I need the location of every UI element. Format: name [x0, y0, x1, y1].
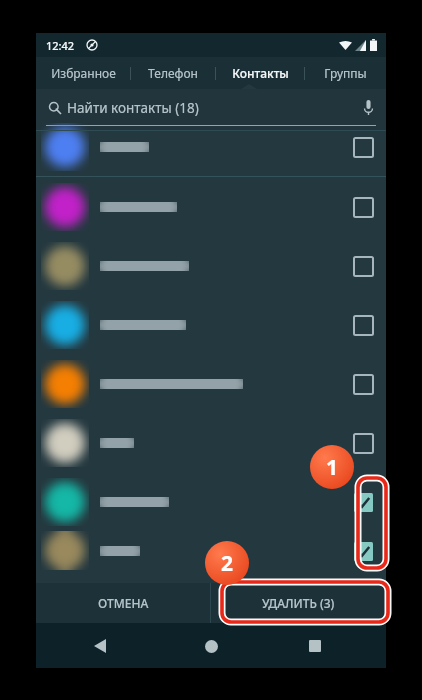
- button[interactable]: Recents: [297, 628, 333, 664]
- button[interactable]: Select contact: [347, 309, 379, 341]
- button[interactable]: Контакты: [216, 57, 304, 89]
- button[interactable]: Home: [193, 628, 229, 664]
- button[interactable]: Select contact: [36, 413, 386, 472]
- button[interactable]: Избранное: [36, 57, 130, 89]
- button[interactable]: Select contact: [36, 236, 386, 295]
- button[interactable]: Select contact: [347, 368, 379, 400]
- button[interactable]: Select contact: [347, 131, 379, 163]
- staticText: Группы: [324, 65, 367, 81]
- staticText: Найти контакты (18): [67, 99, 199, 117]
- button[interactable]: Группы: [305, 57, 386, 89]
- button[interactable]: Selected: [347, 535, 379, 567]
- button[interactable]: Select contact: [347, 191, 379, 223]
- button[interactable]: Selected: [36, 531, 386, 570]
- button[interactable]: Телефон: [131, 57, 215, 89]
- staticText: УДАЛИТЬ (3): [262, 595, 335, 611]
- button[interactable]: Selected: [36, 472, 386, 531]
- button[interactable]: Select contact: [36, 177, 386, 236]
- staticText: 12:42: [46, 38, 75, 53]
- button[interactable]: Select contact: [36, 354, 386, 413]
- staticText: 1: [326, 453, 339, 482]
- button[interactable]: УДАЛИТЬ (3): [211, 583, 386, 623]
- button[interactable]: ОТМЕНА: [36, 583, 210, 623]
- button[interactable]: Select contact: [36, 117, 386, 176]
- button[interactable]: Back: [82, 628, 118, 664]
- staticText: 2: [221, 549, 234, 578]
- staticText: ОТМЕНА: [98, 595, 149, 611]
- button[interactable]: Selected: [347, 486, 379, 518]
- button[interactable]: Select contact: [36, 295, 386, 354]
- staticText: Избранное: [51, 65, 116, 81]
- button[interactable]: Select contact: [347, 250, 379, 282]
- staticText: Контакты: [232, 65, 289, 81]
- button[interactable]: Select contact: [347, 427, 379, 459]
- staticText: Телефон: [148, 65, 198, 81]
